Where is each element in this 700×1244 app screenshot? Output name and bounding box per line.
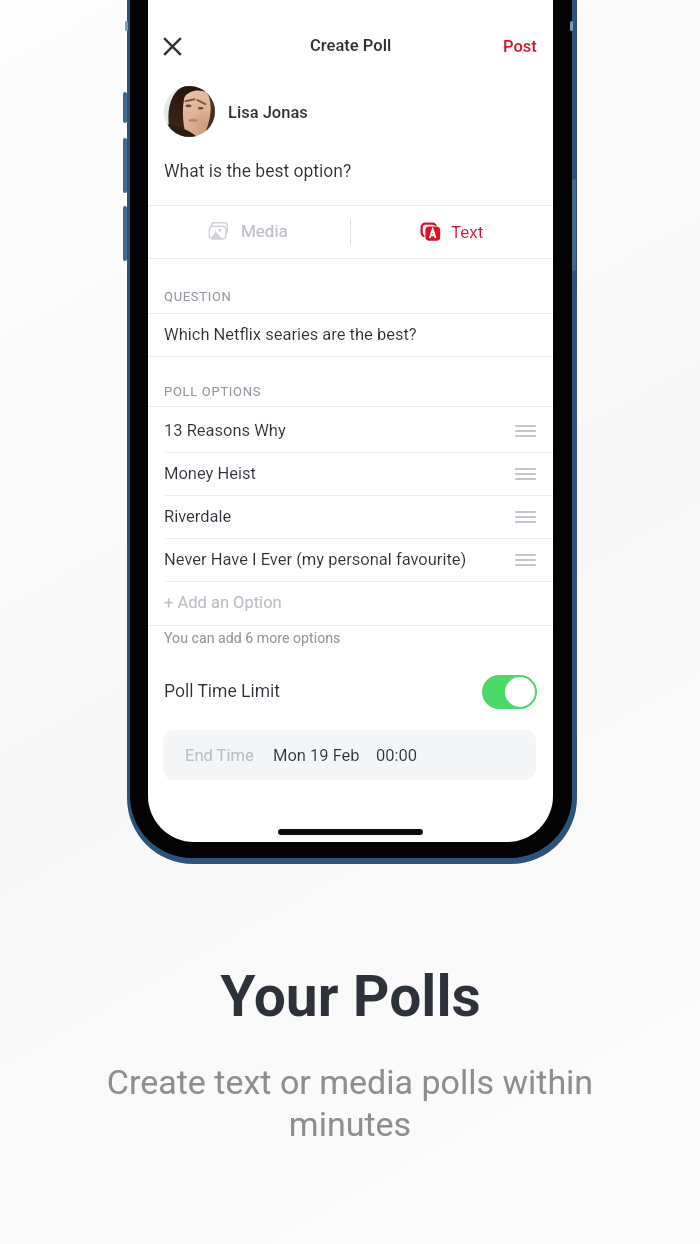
button[interactable]: Riverdale [148, 495, 553, 538]
button[interactable]: Close [150, 24, 194, 68]
staticText: End Time [185, 746, 254, 765]
staticText: 13 Reasons Why [164, 421, 286, 440]
staticText: Money Heist [164, 464, 256, 483]
staticText: Poll Time Limit [164, 681, 281, 702]
button[interactable]: Media [148, 206, 350, 258]
staticText: QUESTION [164, 289, 232, 304]
staticText: Riverdale [164, 507, 232, 526]
staticText: + Add an Option [164, 593, 282, 612]
staticText: POLL OPTIONS [164, 384, 262, 399]
staticText: Media [241, 221, 288, 241]
staticText: 00:00 [376, 746, 418, 765]
staticText: Your Polls [220, 963, 481, 1030]
staticText: Which Netflix searies are the best? [164, 325, 417, 344]
button[interactable]: + Add an Option [148, 581, 553, 624]
button[interactable]: Post [490, 27, 550, 65]
button[interactable]: Text [351, 206, 553, 258]
button[interactable]: 13 Reasons Why [148, 409, 553, 452]
button[interactable]: End Time [163, 730, 536, 780]
button[interactable]: Money Heist [148, 452, 553, 495]
staticText: What is the best option? [164, 161, 352, 182]
button[interactable]: Poll time limit toggle [482, 675, 537, 709]
staticText: Never Have I Ever (my personal favourite… [164, 550, 467, 569]
staticText: You can add 6 more options [164, 630, 341, 647]
staticText: Mon 19 Feb [273, 746, 360, 765]
staticText: Lisa Jonas [228, 103, 308, 122]
staticText: Text [451, 222, 484, 242]
staticText: Create text or media polls within minute… [90, 1062, 610, 1144]
staticText: Post [503, 37, 537, 56]
button[interactable]: Never Have I Ever (my personal favourite… [148, 538, 553, 581]
staticText: Create Poll [310, 36, 392, 55]
